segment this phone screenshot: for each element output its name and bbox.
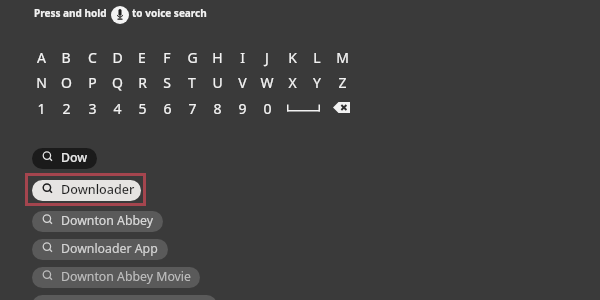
button[interactable]: Space bbox=[286, 102, 321, 114]
staticText: V bbox=[238, 73, 247, 92]
button[interactable]: Downton Abbey Movie bbox=[32, 267, 200, 288]
staticText: D bbox=[112, 48, 123, 67]
button[interactable]: Q bbox=[106, 73, 128, 92]
staticText: 9 bbox=[238, 99, 247, 118]
button[interactable]: 0 bbox=[256, 99, 278, 118]
button[interactable]: I bbox=[231, 48, 253, 67]
button[interactable]: O bbox=[55, 73, 77, 92]
staticText: 8 bbox=[213, 99, 222, 118]
staticText: 5 bbox=[138, 99, 147, 118]
button[interactable]: Z bbox=[331, 73, 353, 92]
button[interactable] bbox=[32, 295, 217, 300]
staticText: 3 bbox=[88, 99, 97, 118]
staticText: U bbox=[212, 73, 223, 92]
button[interactable]: Backspace bbox=[333, 102, 350, 113]
staticText: 2 bbox=[62, 99, 71, 118]
button[interactable]: U bbox=[206, 73, 228, 92]
button[interactable]: T bbox=[181, 73, 203, 92]
button[interactable]: L bbox=[306, 48, 328, 67]
staticText: O bbox=[61, 73, 72, 92]
staticText: E bbox=[138, 48, 146, 67]
staticText: T bbox=[188, 73, 196, 92]
button[interactable]: 7 bbox=[181, 99, 203, 118]
staticText: Downton Abbey bbox=[61, 212, 154, 229]
staticText: Press and hold bbox=[34, 6, 107, 20]
button[interactable]: P bbox=[81, 73, 103, 92]
staticText: B bbox=[61, 48, 71, 67]
staticText: 7 bbox=[188, 99, 197, 118]
button[interactable]: Voice search bbox=[111, 6, 129, 24]
button[interactable]: 6 bbox=[156, 99, 178, 118]
staticText: N bbox=[36, 73, 47, 92]
staticText: 4 bbox=[113, 99, 122, 118]
button[interactable]: 2 bbox=[55, 99, 77, 118]
button[interactable]: F bbox=[156, 48, 178, 67]
button[interactable]: M bbox=[331, 48, 353, 67]
button[interactable]: Dow bbox=[32, 148, 97, 169]
staticText: J bbox=[265, 48, 269, 67]
staticText: Downloader App bbox=[61, 240, 158, 257]
staticText: 0 bbox=[263, 99, 272, 118]
button[interactable]: 3 bbox=[81, 99, 103, 118]
staticText: Downton Abbey Movie bbox=[61, 268, 191, 285]
button[interactable]: 4 bbox=[106, 99, 128, 118]
button[interactable]: B bbox=[55, 48, 77, 67]
button[interactable]: 5 bbox=[131, 99, 153, 118]
staticText: H bbox=[212, 48, 223, 67]
button[interactable]: Downloader App bbox=[32, 239, 168, 260]
staticText: I bbox=[240, 48, 245, 67]
staticText: 6 bbox=[163, 99, 172, 118]
button[interactable]: S bbox=[156, 73, 178, 92]
button[interactable]: J bbox=[256, 48, 278, 67]
button[interactable]: W bbox=[256, 73, 278, 92]
button[interactable]: C bbox=[81, 48, 103, 67]
staticText: L bbox=[313, 48, 321, 67]
staticText: F bbox=[163, 48, 171, 67]
button[interactable]: 9 bbox=[231, 99, 253, 118]
button[interactable]: Downton Abbey bbox=[32, 211, 163, 232]
staticText: R bbox=[138, 73, 147, 92]
staticText: X bbox=[288, 73, 297, 92]
staticText: S bbox=[163, 73, 171, 92]
button[interactable]: D bbox=[106, 48, 128, 67]
button[interactable]: R bbox=[131, 73, 153, 92]
button[interactable]: E bbox=[131, 48, 153, 67]
staticText: Downloader bbox=[61, 181, 135, 198]
button[interactable]: A bbox=[30, 48, 52, 67]
button[interactable]: 8 bbox=[206, 99, 228, 118]
button[interactable]: N bbox=[30, 73, 52, 92]
staticText: A bbox=[37, 48, 46, 67]
button[interactable]: Y bbox=[306, 73, 328, 92]
staticText: M bbox=[336, 48, 349, 67]
staticText: C bbox=[88, 48, 97, 67]
staticText: to voice search bbox=[132, 6, 207, 20]
staticText: G bbox=[187, 48, 198, 67]
staticText: Dow bbox=[61, 149, 88, 166]
staticText: K bbox=[288, 48, 297, 67]
button[interactable]: G bbox=[181, 48, 203, 67]
staticText: W bbox=[260, 73, 274, 92]
button[interactable]: Downloader bbox=[32, 180, 141, 201]
button[interactable]: 1 bbox=[30, 99, 52, 118]
staticText: P bbox=[88, 73, 97, 92]
staticText: Y bbox=[313, 73, 321, 92]
staticText: Z bbox=[338, 73, 347, 92]
button[interactable]: H bbox=[206, 48, 228, 67]
staticText: 1 bbox=[37, 99, 46, 118]
button[interactable]: V bbox=[231, 73, 253, 92]
button[interactable]: X bbox=[281, 73, 303, 92]
button[interactable]: K bbox=[281, 48, 303, 67]
staticText: Q bbox=[112, 73, 123, 92]
